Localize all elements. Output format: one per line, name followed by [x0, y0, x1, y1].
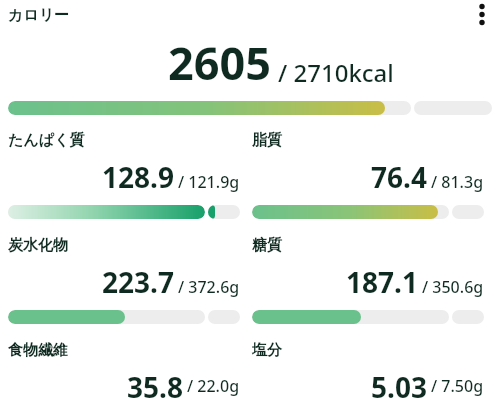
button[interactable]: 糖質 — [252, 236, 484, 324]
staticText: 35.8 — [127, 368, 183, 400]
staticText: / 81.3g — [431, 171, 484, 193]
staticText: たんぱく質 — [8, 131, 85, 150]
button[interactable]: More options — [466, 0, 498, 32]
staticText: 187.1 — [346, 263, 418, 301]
staticText: 128.9 — [102, 158, 174, 196]
staticText: 塩分 — [252, 341, 282, 360]
staticText: 223.7 — [102, 263, 174, 301]
staticText: 脂質 — [252, 131, 282, 150]
button[interactable]: 炭水化物 — [8, 236, 240, 324]
staticText: カロリー — [8, 6, 70, 25]
staticText: 糖質 — [252, 236, 282, 255]
staticText: 76.4 — [371, 158, 427, 196]
staticText: / 121.9g — [178, 171, 240, 193]
button[interactable]: たんぱく質 — [8, 131, 240, 219]
button[interactable]: 食物繊維 — [8, 341, 240, 400]
button[interactable]: 塩分 — [252, 341, 484, 400]
staticText: / 2710kcal — [278, 56, 394, 89]
staticText: 2605 — [168, 32, 271, 93]
staticText: / 22.0g — [187, 375, 240, 397]
staticText: 5.03 — [371, 368, 427, 400]
staticText: / 7.50g — [431, 375, 484, 397]
button[interactable]: 脂質 — [252, 131, 484, 219]
staticText: / 372.6g — [178, 276, 240, 298]
staticText: 食物繊維 — [8, 341, 68, 360]
staticText: / 350.6g — [422, 276, 484, 298]
staticText: 炭水化物 — [8, 236, 68, 255]
button[interactable]: 2605 — [0, 32, 394, 93]
